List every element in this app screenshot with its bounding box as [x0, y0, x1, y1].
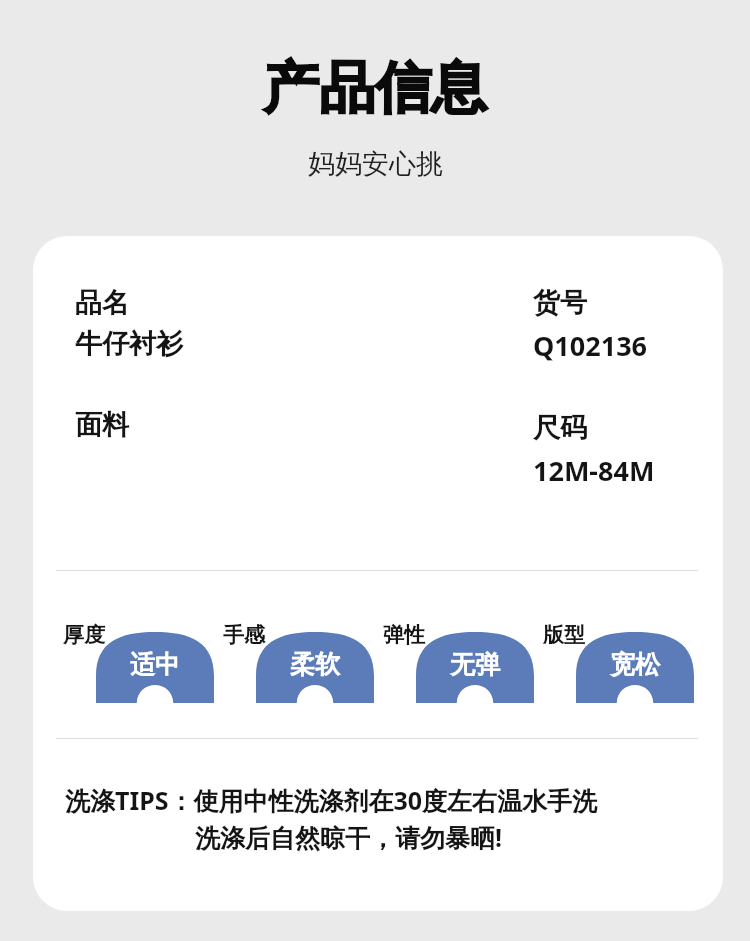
- staticText: 洗涤TIPS：使用中性洗涤剂在30度左右温水手洗: [65, 783, 598, 817]
- staticText: 尺码: [533, 411, 587, 445]
- staticText: 厚度: [63, 622, 105, 648]
- staticText: Q102136: [533, 327, 648, 364]
- staticText: 无弹: [450, 649, 500, 680]
- staticText: 版型: [543, 622, 585, 648]
- staticText: 弹性: [383, 622, 425, 648]
- button[interactable]: 弹性 无弹: [383, 620, 534, 703]
- staticText: 品名: [75, 286, 129, 320]
- button[interactable]: 厚度 适中: [63, 620, 214, 703]
- button[interactable]: 品名: [33, 236, 723, 911]
- staticText: 柔软: [290, 649, 340, 680]
- staticText: 产品信息: [263, 53, 487, 124]
- staticText: 货号: [533, 286, 587, 320]
- staticText: 手感: [223, 622, 265, 648]
- staticText: 适中: [130, 649, 180, 680]
- staticText: 洗涤后自然晾干，请勿暴晒!: [195, 820, 503, 854]
- staticText: 面料: [75, 408, 129, 442]
- staticText: 12M-84M: [533, 452, 655, 489]
- staticText: 牛仔衬衫: [75, 327, 183, 361]
- button[interactable]: 版型 宽松: [543, 620, 694, 703]
- button[interactable]: 手感 柔软: [223, 620, 374, 703]
- staticText: 妈妈安心挑: [308, 147, 443, 181]
- staticText: 宽松: [610, 649, 660, 680]
